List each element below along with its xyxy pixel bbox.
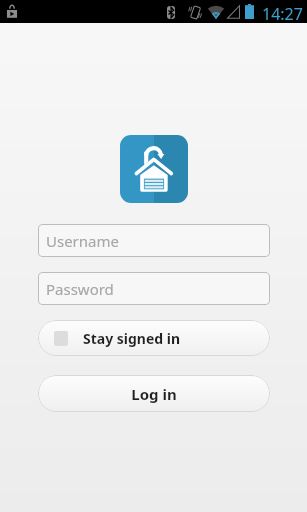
button[interactable]: Password <box>38 272 270 305</box>
button[interactable]: Stay signed in <box>38 320 270 356</box>
staticText: Log in <box>131 384 177 404</box>
staticText: Username <box>46 231 119 251</box>
button[interactable]: Username <box>38 224 270 257</box>
staticText: 14:27 <box>262 3 303 25</box>
staticText: Password <box>46 279 114 299</box>
button[interactable]: Log in <box>38 375 270 412</box>
staticText: Stay signed in <box>83 329 181 348</box>
